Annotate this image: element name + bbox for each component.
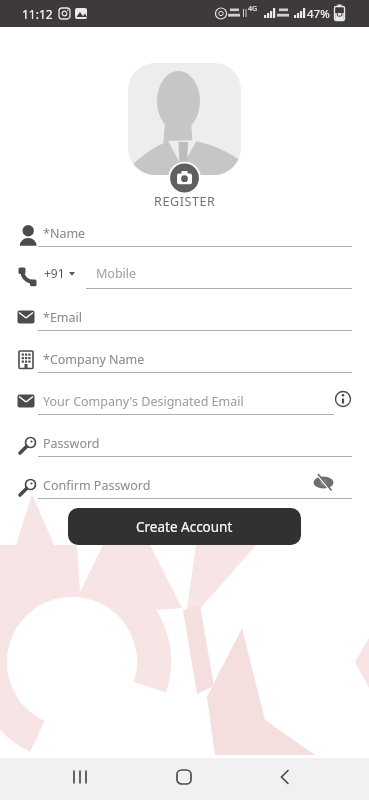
staticText: *Email — [43, 309, 82, 326]
staticText: Password — [43, 435, 100, 452]
staticText: REGISTER — [154, 193, 216, 210]
staticText: 11:12 — [22, 6, 53, 22]
staticText: 47% — [307, 6, 330, 22]
staticText: *Company Name — [43, 351, 145, 368]
staticText: 4G — [248, 4, 258, 14]
staticText: *Name — [43, 225, 86, 242]
staticText: +91 — [44, 265, 65, 281]
staticText: Mobile — [96, 265, 137, 282]
staticText: Confirm Password — [43, 477, 151, 494]
staticText: Create Account — [136, 518, 233, 536]
staticText: Your Company's Designated Email — [43, 393, 244, 410]
